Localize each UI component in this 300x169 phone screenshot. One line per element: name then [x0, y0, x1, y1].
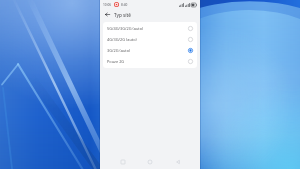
button[interactable]: Pouze 2G — [103, 56, 197, 67]
button[interactable]: Home — [145, 157, 155, 167]
button[interactable]: Back — [173, 157, 183, 167]
staticText: 10:06 — [103, 3, 112, 7]
button[interactable]: 4G/3G/2G (auto) — [103, 34, 197, 45]
staticText: 5G/4G/3G/2G (auto) — [107, 26, 188, 31]
staticText: Typ sítě — [114, 12, 131, 18]
button[interactable]: 3G/2G (auto) — [103, 45, 197, 56]
button[interactable]: Back — [103, 10, 112, 19]
staticText: 8:40 — [121, 3, 128, 7]
staticText: Pouze 2G — [107, 59, 188, 64]
button[interactable]: Recents — [118, 157, 128, 167]
button[interactable]: 5G/4G/3G/2G (auto) — [103, 23, 197, 34]
staticText: 3G/2G (auto) — [107, 48, 188, 53]
staticText: 4G/3G/2G (auto) — [107, 37, 188, 42]
